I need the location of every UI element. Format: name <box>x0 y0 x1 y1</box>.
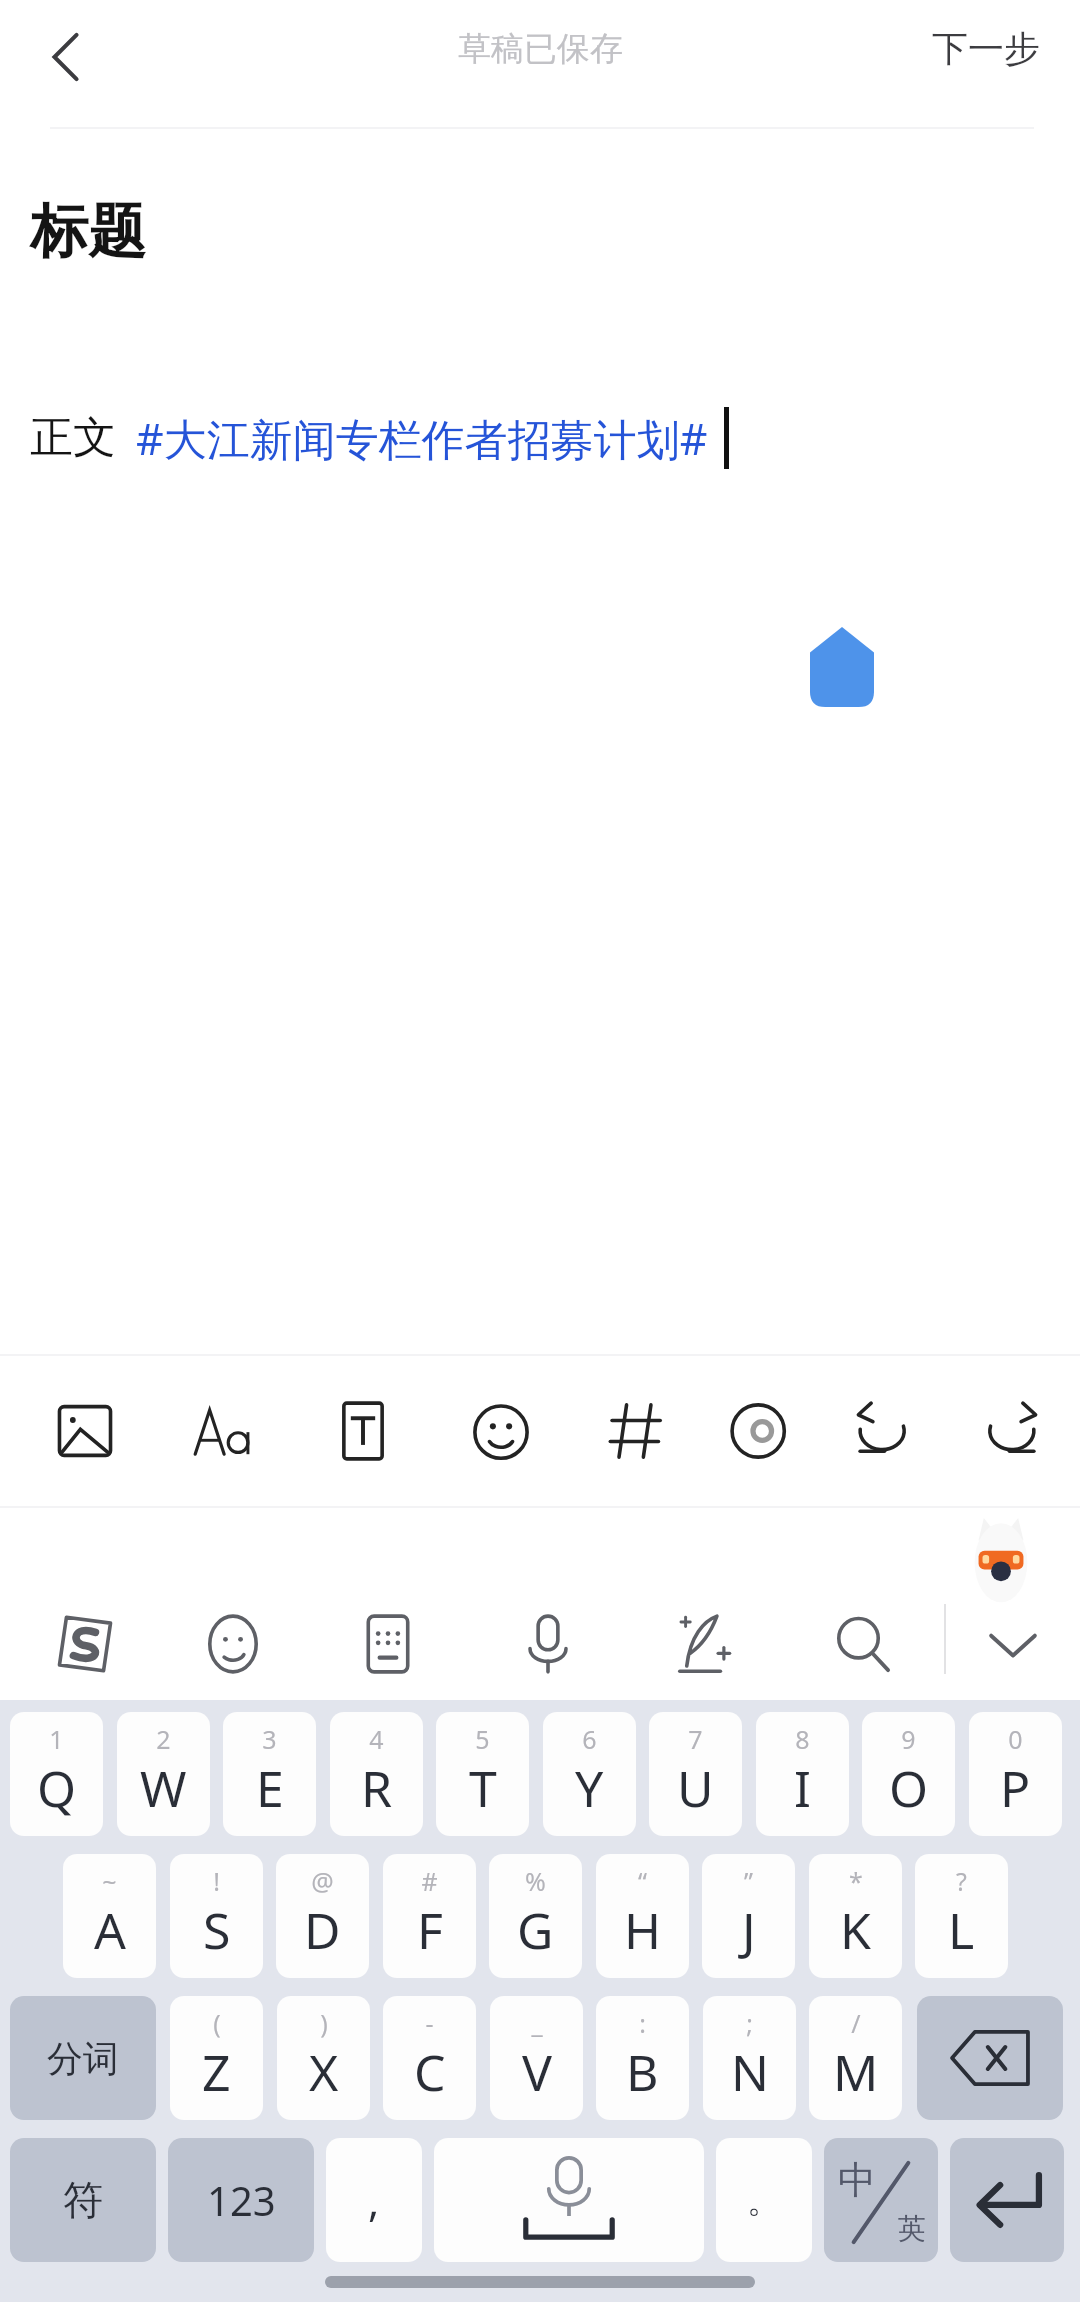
staticText: ; <box>746 2006 753 2040</box>
button[interactable]: Handwriting <box>645 1586 761 1702</box>
staticText: R <box>361 1754 393 1822</box>
button[interactable]: ” <box>702 1854 795 1978</box>
button[interactable]: 标题 <box>0 187 1080 276</box>
button[interactable]: @ <box>276 1854 369 1978</box>
staticText: B <box>626 2038 659 2106</box>
button[interactable]: Redo <box>958 1356 1068 1506</box>
button[interactable]: Chinese English toggle <box>824 2138 938 2262</box>
staticText: ! <box>213 1864 220 1898</box>
staticText: 9 <box>901 1722 916 1756</box>
staticText: L <box>948 1896 975 1964</box>
button[interactable]: Text style <box>168 1356 278 1506</box>
button[interactable]: 6 <box>543 1712 636 1836</box>
button[interactable]: Emoji <box>446 1356 556 1506</box>
button[interactable]: ? <box>915 1854 1008 1978</box>
button[interactable]: : <box>596 1996 689 2120</box>
staticText: ~ <box>102 1864 117 1898</box>
button[interactable]: % <box>489 1854 582 1978</box>
staticText: 标题 <box>30 195 146 268</box>
staticText: “ <box>638 1864 647 1898</box>
button[interactable]: Search <box>804 1586 920 1702</box>
button[interactable]: 3 <box>223 1712 316 1836</box>
staticText: _ <box>531 2006 543 2040</box>
button[interactable]: 2 <box>117 1712 210 1836</box>
button[interactable]: 9 <box>862 1712 955 1836</box>
button[interactable]: Sogou keyboard <box>27 1586 143 1702</box>
button[interactable]: 1 <box>10 1712 103 1836</box>
staticText: 1 <box>49 1722 64 1756</box>
staticText: G <box>517 1896 554 1964</box>
button[interactable]: Enter <box>950 2138 1064 2262</box>
button[interactable]: Mention <box>709 1356 819 1506</box>
button[interactable]: Back <box>16 7 116 107</box>
staticText: ? <box>956 1864 967 1898</box>
button[interactable]: 正文 <box>0 407 1080 469</box>
staticText: M <box>833 2038 879 2106</box>
staticText: N <box>731 2038 769 2106</box>
button[interactable]: - <box>383 1996 476 2120</box>
staticText: 。 <box>747 2179 781 2222</box>
button[interactable]: ; <box>703 1996 796 2120</box>
staticText: 下一步 <box>932 26 1040 71</box>
button[interactable]: 5 <box>436 1712 529 1836</box>
staticText: : <box>639 2006 646 2040</box>
staticText: E <box>256 1754 284 1822</box>
staticText: 6 <box>582 1722 597 1756</box>
staticText: I <box>794 1754 811 1822</box>
staticText: # <box>421 1864 438 1898</box>
staticText: % <box>525 1864 546 1898</box>
button[interactable]: ! <box>170 1854 263 1978</box>
staticText: 5 <box>475 1722 490 1756</box>
button[interactable]: 8 <box>756 1712 849 1836</box>
staticText: ( <box>213 2006 221 2040</box>
staticText: 4 <box>369 1722 384 1756</box>
button[interactable]: ( <box>170 1996 263 2120</box>
staticText: 0 <box>1008 1722 1023 1756</box>
button[interactable]: Space <box>434 2138 704 2262</box>
button[interactable]: Hide keyboard <box>955 1586 1071 1702</box>
button[interactable]: ) <box>277 1996 370 2120</box>
staticText: U <box>677 1754 714 1822</box>
button[interactable]: 7 <box>649 1712 742 1836</box>
button[interactable]: / <box>809 1996 902 2120</box>
button[interactable]: Emoji <box>175 1586 291 1702</box>
staticText: T <box>469 1754 497 1822</box>
button[interactable]: 。 <box>716 2138 812 2262</box>
button[interactable]: 0 <box>969 1712 1062 1836</box>
staticText: F <box>417 1896 443 1964</box>
button[interactable]: Backspace <box>917 1996 1063 2120</box>
staticText: X <box>309 2038 339 2106</box>
staticText: , <box>368 2172 380 2229</box>
staticText: ) <box>320 2006 328 2040</box>
button[interactable]: Undo <box>826 1356 936 1506</box>
button[interactable]: Title block <box>308 1356 418 1506</box>
button[interactable]: ~ <box>63 1854 156 1978</box>
staticText: Y <box>575 1754 604 1822</box>
staticText: 分词 <box>47 2036 119 2081</box>
button[interactable]: 分词 <box>10 1996 156 2120</box>
staticText: O <box>889 1754 929 1822</box>
button[interactable]: 符 <box>10 2138 156 2262</box>
staticText: 7 <box>688 1722 703 1756</box>
staticText: 中 <box>838 2156 876 2204</box>
staticText: 英 <box>898 2211 926 2246</box>
staticText: D <box>304 1896 341 1964</box>
button[interactable]: _ <box>490 1996 583 2120</box>
staticText: H <box>624 1896 662 1964</box>
button[interactable]: “ <box>596 1854 689 1978</box>
button[interactable]: Insert image <box>30 1356 140 1506</box>
staticText: C <box>414 2038 446 2106</box>
staticText: - <box>425 2006 434 2040</box>
button[interactable]: 4 <box>330 1712 423 1836</box>
button[interactable]: * <box>809 1854 902 1978</box>
button[interactable]: , <box>326 2138 422 2262</box>
button[interactable]: # <box>383 1854 476 1978</box>
button[interactable]: Keyboard layout <box>330 1586 446 1702</box>
button[interactable]: Voice input <box>490 1586 606 1702</box>
staticText: * <box>849 1864 863 1898</box>
button[interactable]: 下一步 <box>916 14 1056 83</box>
staticText: W <box>140 1754 187 1822</box>
button[interactable]: 123 <box>168 2138 314 2262</box>
button[interactable]: Topic <box>582 1356 692 1506</box>
staticText: Q <box>37 1754 77 1822</box>
